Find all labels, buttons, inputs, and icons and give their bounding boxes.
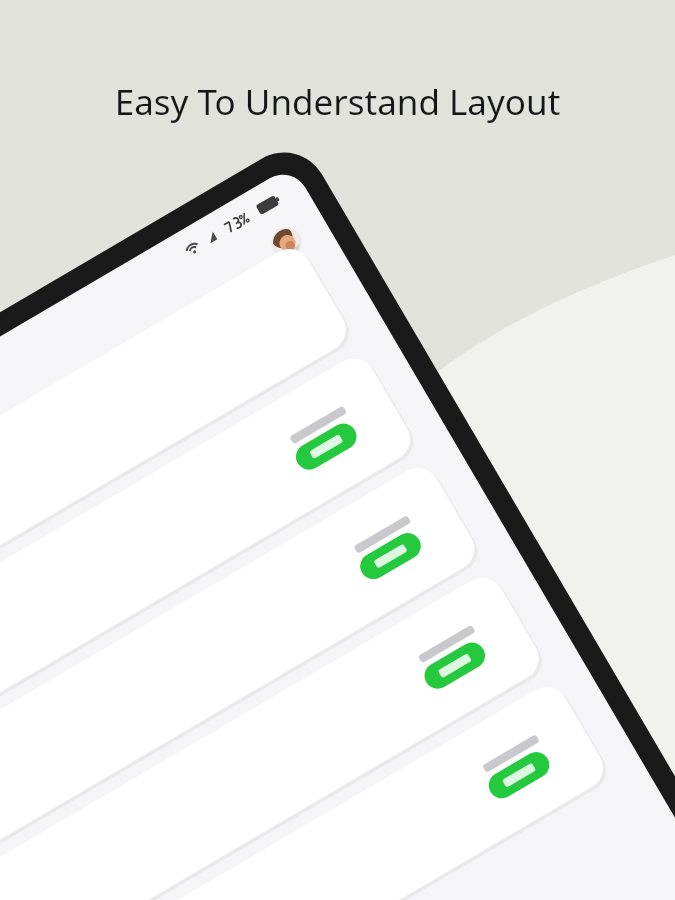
staticText: Easy To Understand Layout xyxy=(12,78,663,126)
button[interactable]: Entry 1.87 xyxy=(4,634,58,674)
button[interactable]: Easy To Understand Layout xyxy=(0,78,675,126)
button[interactable]: Take Profit 1.82 xyxy=(262,792,310,830)
